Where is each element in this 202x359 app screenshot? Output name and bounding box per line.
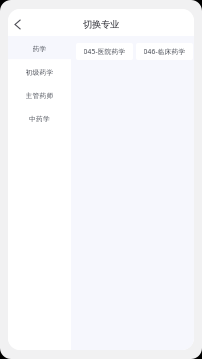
staticText: 切换专业 <box>83 19 119 30</box>
staticText: 046-临床药学 <box>143 47 185 56</box>
button[interactable]: 药学 <box>8 36 71 59</box>
button[interactable]: Back <box>8 12 27 33</box>
button[interactable]: 046-临床药学 <box>136 43 193 60</box>
button[interactable]: 045-医院药学 <box>76 43 133 60</box>
staticText: 中药学 <box>29 115 50 123</box>
staticText: 045-医院药学 <box>83 47 125 56</box>
staticText: 主管药师 <box>25 92 53 100</box>
button[interactable]: 初级药学 <box>8 59 71 83</box>
staticText: 药学 <box>32 45 46 53</box>
button[interactable]: 主管药师 <box>8 83 71 106</box>
staticText: 初级药学 <box>25 68 53 77</box>
button[interactable]: 中药学 <box>8 106 71 129</box>
